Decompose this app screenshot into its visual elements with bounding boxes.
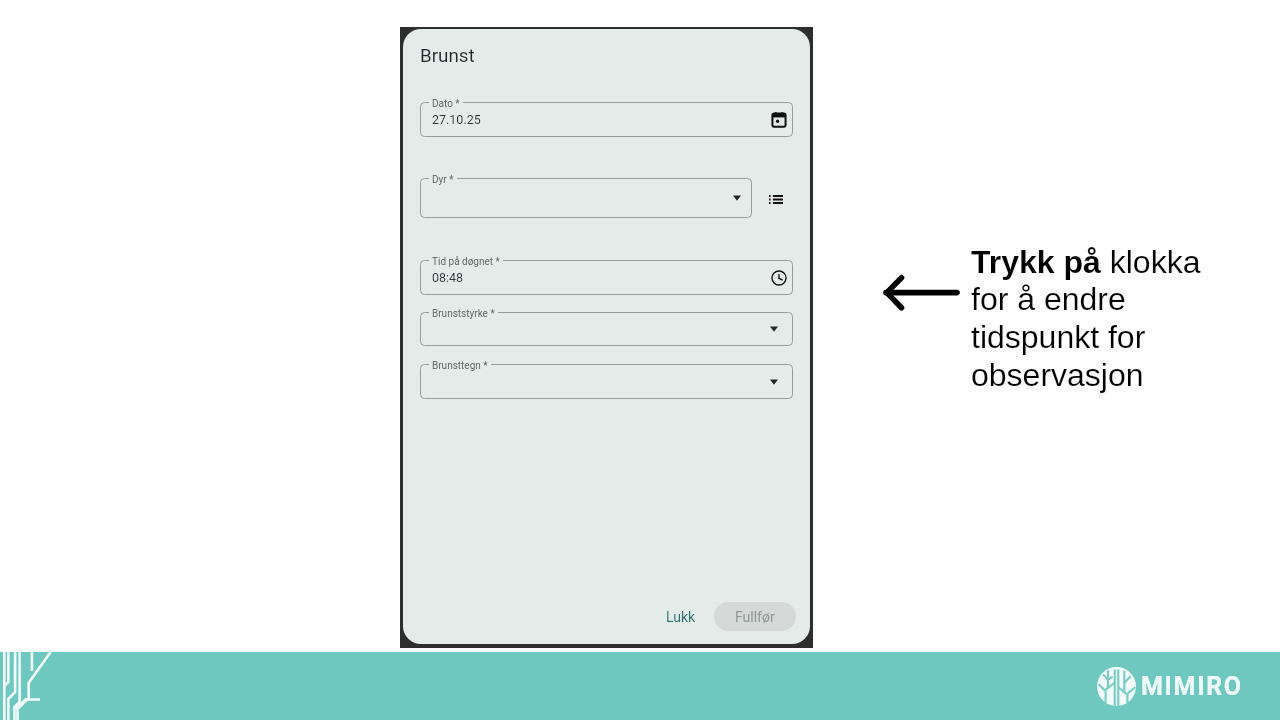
staticText: Trykk på klokka for å endre tidspunkt fo… <box>971 244 1221 393</box>
staticText: Dyr * <box>432 174 454 186</box>
button[interactable] <box>420 178 752 218</box>
button[interactable] <box>420 364 793 399</box>
button[interactable]: 27.10.25 <box>420 102 793 137</box>
staticText: Lukk <box>666 609 696 625</box>
staticText: 08:48 <box>432 270 464 285</box>
button[interactable]: 08:48 <box>420 260 793 295</box>
button[interactable]: Fullfør <box>714 602 796 631</box>
button[interactable]: Velg fra liste <box>766 189 786 209</box>
staticText: Brunststyrke * <box>432 308 495 320</box>
staticText: Brunsttegn * <box>432 360 488 372</box>
staticText: 27.10.25 <box>432 112 481 127</box>
staticText: Brunst <box>420 45 475 67</box>
staticText: Tid på døgnet * <box>432 256 500 268</box>
staticText: Dato * <box>432 98 460 110</box>
button[interactable]: Lukk <box>655 602 706 631</box>
staticText: Fullfør <box>735 609 775 625</box>
button[interactable] <box>420 312 793 346</box>
staticText: MIMIRO <box>1141 672 1243 701</box>
